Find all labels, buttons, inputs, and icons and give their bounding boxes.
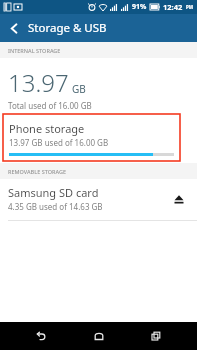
staticText: 91% [132,2,147,12]
staticText: PM [186,4,194,10]
staticText: Total used of 16.00 GB [8,100,92,111]
staticText: GB [72,82,86,96]
staticText: Samsung SD card [8,185,99,200]
staticText: 12:42 [163,2,183,12]
button[interactable]: Recent apps [139,322,173,350]
button[interactable]: Back [24,322,58,350]
staticText: 13.97 [8,66,69,99]
button[interactable]: Eject SD card [169,189,189,209]
button[interactable]: Samsung SD card [0,179,197,220]
button[interactable]: Phone storage [3,114,180,161]
staticText: INTERNAL STORAGE [8,47,61,54]
staticText: 13.97 GB used of 16.00 GB [9,137,109,148]
button[interactable]: Home [82,322,116,350]
staticText: REMOVABLE STORAGE [8,168,66,175]
button[interactable]: Navigate up [0,14,28,42]
staticText: Storage & USB [28,20,107,36]
staticText: 4.35 GB used of 14.63 GB [8,201,103,212]
staticText: Phone storage [9,121,85,136]
